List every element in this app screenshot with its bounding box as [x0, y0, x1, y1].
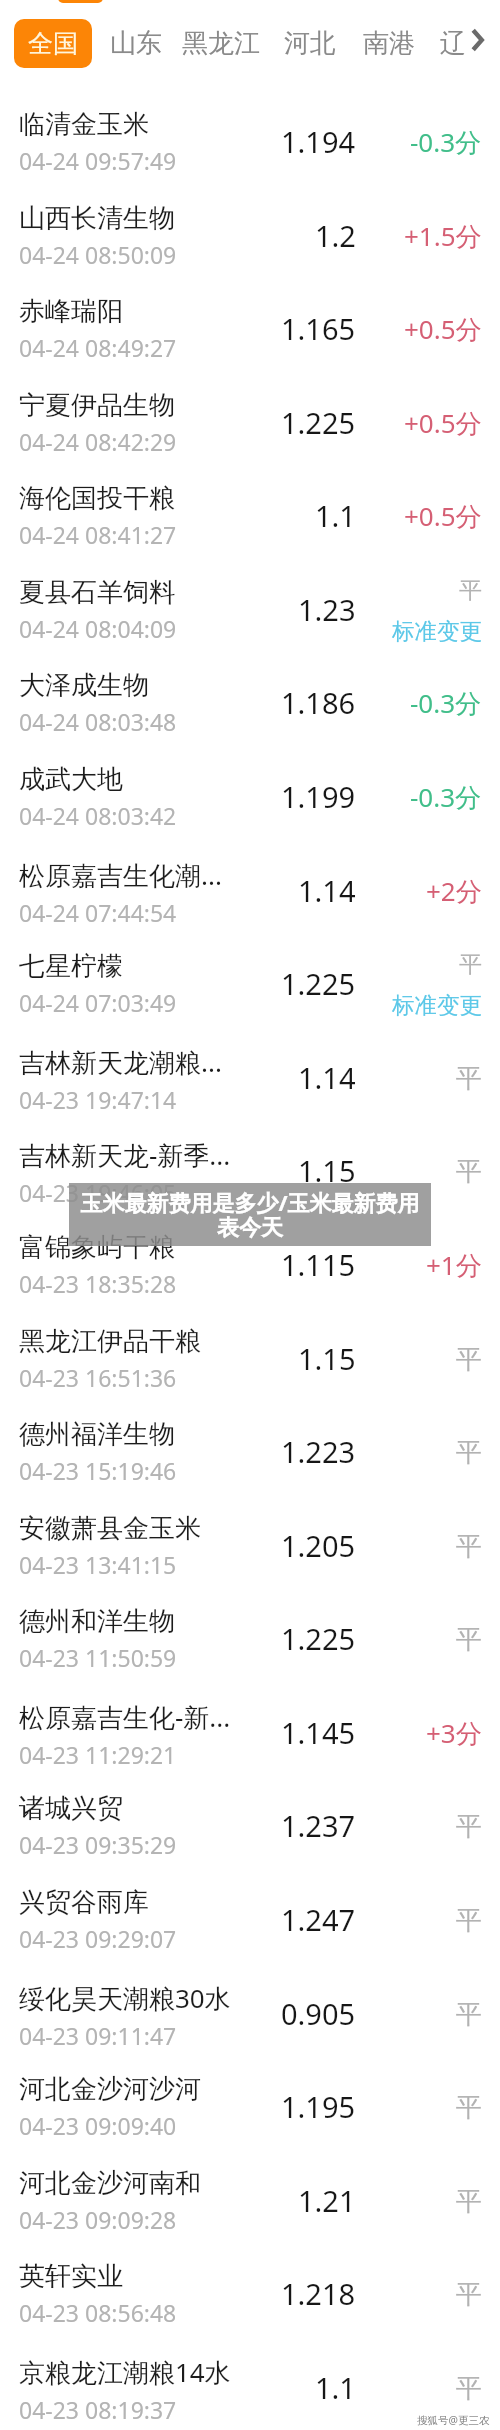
staticText: 04-24 08:42:29 [19, 426, 177, 457]
staticText: 德州和洋生物 [19, 1605, 175, 1638]
staticText: 英轩实业 [19, 2260, 123, 2293]
button[interactable]: 山东 [100, 19, 172, 68]
staticText: +1.5分 [404, 218, 482, 254]
staticText: 标准变更 [392, 991, 482, 1019]
staticText: +0.5分 [404, 405, 482, 441]
button[interactable]: 黑龙江伊品干粮 [0, 1307, 500, 1401]
staticText: 1.145 [281, 1713, 356, 1752]
button[interactable]: 河北金沙河沙河 [0, 2055, 500, 2149]
button[interactable]: 辽 [430, 19, 476, 68]
staticText: 1.15 [298, 1151, 356, 1190]
button[interactable]: 英轩实业 [0, 2242, 500, 2336]
staticText: 04-24 07:03:49 [19, 987, 177, 1018]
staticText: 04-23 09:11:47 [19, 2020, 177, 2051]
button[interactable]: 宁夏伊品生物 [0, 371, 500, 465]
button[interactable]: 临清金玉米 [0, 90, 500, 184]
staticText: 04-23 13:41:15 [19, 1549, 177, 1580]
staticText: 标准变更 [392, 617, 482, 645]
staticText: 04-24 08:41:27 [19, 519, 177, 550]
staticText: -0.3分 [410, 779, 482, 815]
staticText: 04-23 11:50:59 [19, 1642, 177, 1673]
button[interactable]: 德州和洋生物 [0, 1587, 500, 1681]
staticText: 1.21 [298, 2181, 356, 2220]
button[interactable]: 赤峰瑞阳 [0, 277, 500, 371]
staticText: 平 [456, 1998, 482, 2031]
staticText: 临清金玉米 [19, 108, 149, 141]
staticText: 山西长清生物 [19, 202, 175, 235]
staticText: 1.115 [281, 1245, 356, 1284]
staticText: 04-24 08:04:09 [19, 613, 177, 644]
button[interactable]: 吉林新天龙潮粮... [0, 1026, 500, 1120]
staticText: 平 [456, 1436, 482, 1469]
staticText: 04-23 18:35:28 [19, 1268, 177, 1299]
button[interactable]: 河北 [274, 19, 346, 68]
staticText: 富锦象屿干粮 [19, 1231, 175, 1264]
staticText: 河北金沙河南和 [19, 2167, 201, 2200]
button[interactable]: 七星柠檬 [0, 932, 500, 1026]
staticText: 海伦国投干粮 [19, 482, 175, 515]
button[interactable]: 松原嘉吉生化-新... [0, 1681, 500, 1775]
staticText: 04-24 08:03:42 [19, 800, 177, 831]
staticText: +2分 [426, 873, 482, 909]
staticText: 04-24 09:57:49 [19, 145, 177, 176]
button[interactable]: 成武大地 [0, 745, 500, 839]
staticText: 绥化昊天潮粮30水 [19, 1980, 231, 2016]
button[interactable]: 兴贸谷雨库 [0, 1868, 500, 1962]
staticText: 04-23 08:56:48 [19, 2297, 177, 2328]
staticText: 1.225 [281, 1619, 356, 1658]
staticText: 1.237 [281, 1806, 356, 1845]
staticText: 04-23 09:29:07 [19, 1923, 177, 1954]
staticText: 1.1 [315, 2368, 356, 2407]
staticText: 1.14 [298, 1058, 356, 1097]
staticText: 平 [456, 1623, 482, 1656]
button[interactable]: 富锦象屿干粮 [0, 1213, 500, 1307]
button[interactable]: 南港 [353, 19, 425, 68]
staticText: 1.247 [281, 1900, 356, 1939]
staticText: 1.186 [281, 683, 356, 722]
staticText: 平 [459, 950, 482, 979]
button[interactable]: 诸城兴贸 [0, 1774, 500, 1868]
button[interactable]: 夏县石羊饲料 [0, 558, 500, 652]
staticText: 平 [459, 576, 482, 605]
staticText: 京粮龙江潮粮14水 [19, 2354, 231, 2390]
button[interactable]: 京粮龙江潮粮14水 [0, 2336, 500, 2430]
staticText: 宁夏伊品生物 [19, 389, 175, 422]
staticText: 搜狐号@更三农 [417, 2413, 490, 2427]
staticText: 平 [456, 2278, 482, 2311]
staticText: 南港 [363, 27, 415, 60]
button[interactable]: 海伦国投干粮 [0, 464, 500, 558]
staticText: 黑龙江 [182, 27, 260, 60]
staticText: 04-23 08:19:37 [19, 2394, 177, 2425]
button[interactable]: 全国 [14, 19, 92, 68]
staticText: 德州福洋生物 [19, 1418, 175, 1451]
staticText: 赤峰瑞阳 [19, 295, 123, 328]
staticText: 1.199 [281, 777, 356, 816]
staticText: 平 [456, 1904, 482, 1937]
staticText: 平 [456, 2091, 482, 2124]
button[interactable]: More regions [458, 17, 496, 63]
staticText: 松原嘉吉生化潮... [19, 857, 222, 893]
button[interactable]: 吉林新天龙-新季... [0, 1119, 500, 1213]
staticText: 04-23 19:46:05 [19, 1177, 177, 1208]
staticText: 1.194 [281, 122, 356, 161]
button[interactable]: 山西长清生物 [0, 184, 500, 278]
staticText: 平 [456, 2185, 482, 2218]
staticText: 七星柠檬 [19, 950, 123, 983]
staticText: 04-23 16:51:36 [19, 1362, 177, 1393]
staticText: 1.1 [315, 496, 356, 535]
staticText: 大泽成生物 [19, 669, 149, 702]
button[interactable]: 河北金沙河南和 [0, 2149, 500, 2243]
staticText: +3分 [426, 1715, 482, 1751]
staticText: 04-23 09:09:28 [19, 2204, 177, 2235]
button[interactable]: 松原嘉吉生化潮... [0, 839, 500, 933]
button[interactable]: 绥化昊天潮粮30水 [0, 1962, 500, 2056]
button[interactable]: 安徽萧县金玉米 [0, 1494, 500, 1588]
staticText: 1.195 [281, 2087, 356, 2126]
staticText: 夏县石羊饲料 [19, 576, 175, 609]
button[interactable]: 德州福洋生物 [0, 1400, 500, 1494]
staticText: 河北金沙河沙河 [19, 2073, 201, 2106]
button[interactable]: 大泽成生物 [0, 651, 500, 745]
staticText: +0.5分 [404, 311, 482, 347]
staticText: 平 [456, 1810, 482, 1843]
button[interactable]: 黑龙江 [172, 19, 270, 68]
